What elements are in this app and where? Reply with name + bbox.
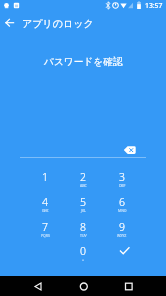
staticText: MNO: [118, 208, 127, 213]
button[interactable]: [105, 216, 139, 239]
staticText: 5: [80, 195, 86, 209]
button[interactable]: [105, 191, 139, 214]
staticText: 0: [80, 244, 86, 258]
button[interactable]: [115, 276, 143, 296]
button[interactable]: [112, 240, 138, 262]
staticText: TUV: [80, 233, 87, 238]
button[interactable]: [66, 191, 100, 214]
staticText: DEF: [119, 183, 126, 188]
button[interactable]: [66, 216, 100, 239]
staticText: JKL: [81, 208, 86, 213]
staticText: 7: [42, 220, 48, 234]
button[interactable]: [66, 240, 100, 263]
button[interactable]: [70, 276, 98, 296]
button[interactable]: [28, 166, 62, 189]
staticText: アプリのロック: [22, 17, 94, 30]
staticText: 1: [42, 170, 48, 184]
staticText: 6: [119, 195, 125, 209]
staticText: パスワードを確認: [44, 56, 123, 68]
staticText: 3: [119, 170, 125, 184]
staticText: 4: [42, 195, 48, 209]
button[interactable]: [3, 16, 17, 30]
staticText: ABC: [80, 183, 87, 188]
button[interactable]: [105, 166, 139, 189]
staticText: PQRS: [41, 233, 50, 238]
staticText: 9: [119, 220, 125, 234]
staticText: GHI: [42, 208, 49, 213]
button[interactable]: [24, 276, 52, 296]
staticText: 8: [80, 220, 86, 234]
button[interactable]: [120, 142, 140, 158]
button[interactable]: [28, 216, 62, 239]
staticText: 13:57: [145, 1, 163, 10]
button[interactable]: [66, 166, 100, 189]
staticText: WXYZ: [117, 233, 127, 238]
button[interactable]: [28, 191, 62, 214]
staticText: +: [82, 257, 85, 262]
staticText: 2: [80, 170, 86, 184]
